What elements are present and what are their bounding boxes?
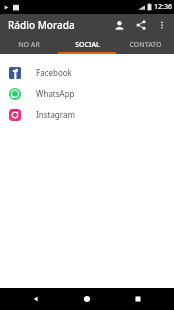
button[interactable]: NO AR [0, 36, 58, 54]
staticText: Facebook [36, 67, 72, 78]
staticText: WhatsApp [36, 88, 75, 99]
button[interactable]: More options [152, 15, 172, 35]
button[interactable]: Facebook [0, 62, 174, 83]
button[interactable]: Home [72, 288, 102, 310]
button[interactable]: SOCIAL [58, 36, 116, 54]
staticText: Instagram [36, 109, 75, 120]
staticText: 12:36 [154, 2, 172, 12]
staticText: Rádio Morada [8, 18, 75, 32]
staticText: SOCIAL [75, 40, 100, 50]
staticText: CONTATO [129, 40, 162, 50]
button[interactable]: Instagram [0, 104, 174, 125]
button[interactable]: WhatsApp [0, 83, 174, 104]
button[interactable]: Share [130, 14, 152, 36]
button[interactable]: Recent apps [123, 288, 153, 310]
staticText: NO AR [18, 40, 40, 50]
button[interactable]: Account [108, 14, 130, 36]
button[interactable]: CONTATO [116, 36, 174, 54]
button[interactable]: Back [21, 288, 51, 310]
